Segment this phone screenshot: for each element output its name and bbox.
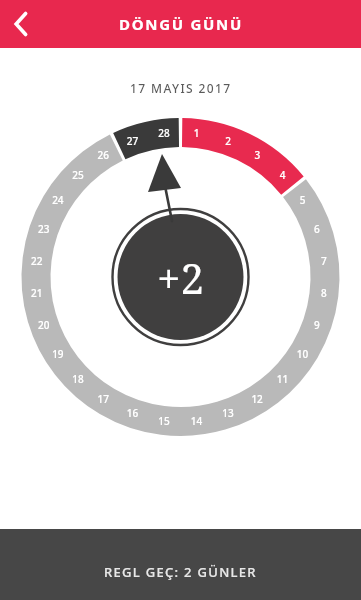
staticText: 17 MAYIS 2017 [130, 80, 232, 96]
button[interactable]: Back [0, 1, 46, 47]
button[interactable]: Cycle day dial, 2 days late [0, 0, 361, 600]
staticText: DÖNGÜ GÜNÜ [119, 14, 243, 34]
staticText: REGL GEÇ: 2 GÜNLER [104, 563, 257, 581]
button[interactable]: REGL GEÇ: 2 GÜNLER [0, 529, 361, 600]
